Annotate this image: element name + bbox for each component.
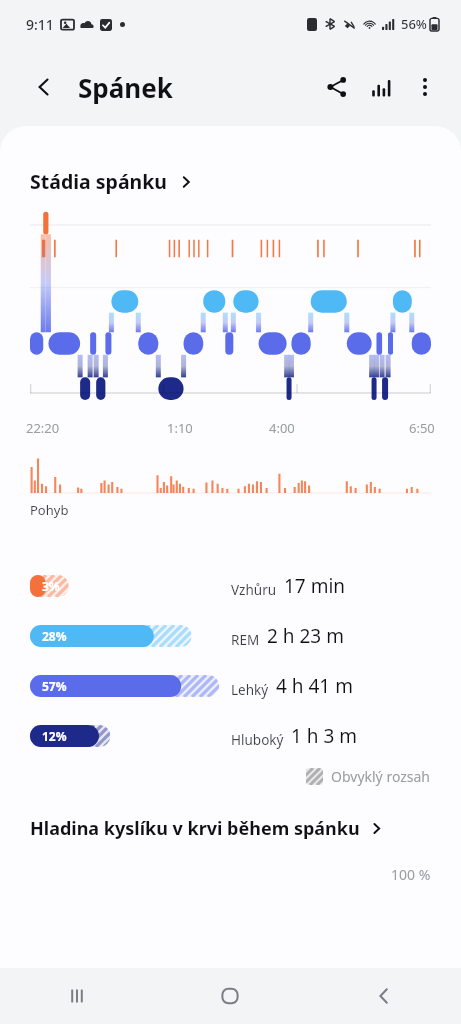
staticText: 3% [42,578,60,594]
staticText: 9:11 [26,15,54,34]
button[interactable]: Stádia spánku [0,166,461,197]
button[interactable]: 57% [0,661,461,711]
staticText: REM [231,631,260,649]
staticText: Pohyb [30,501,69,519]
staticText: 12% [42,728,67,744]
staticText: 56% [401,15,427,33]
button[interactable]: Back [307,968,461,1024]
staticText: 57% [42,678,67,694]
staticText: Hladina kyslíku v krvi během spánku [30,816,360,841]
button[interactable]: Hladina kyslíku v krvi během spánku [0,816,461,841]
button[interactable]: Home [153,968,307,1024]
button[interactable]: Back [24,67,64,107]
staticText: 17 min [284,573,346,599]
staticText: 1 h 3 m [291,723,358,749]
button[interactable]: 28% [0,611,461,661]
staticText: Stádia spánku [30,168,168,195]
staticText: Hluboký [231,731,284,749]
staticText: 2 h 23 m [267,623,344,649]
staticText: 22:20 [26,419,60,437]
button[interactable]: Statistics [359,65,403,109]
button[interactable]: Share [315,65,359,109]
staticText: 4 h 41 m [276,673,353,699]
button[interactable]: 3% [0,561,461,611]
staticText: Obvyklý rozsah [331,767,431,786]
staticText: Spánek [78,70,173,105]
staticText: Vzhůru [231,581,277,599]
staticText: Lehký [231,681,269,699]
button[interactable]: Recent apps [0,968,153,1024]
staticText: 6:50 [409,419,435,437]
button[interactable]: 12% [0,711,461,761]
button[interactable]: More options [403,65,447,109]
staticText: 28% [42,628,67,644]
staticText: 1:10 [167,419,193,437]
staticText: 4:00 [269,419,295,437]
staticText: 100 % [391,865,431,884]
